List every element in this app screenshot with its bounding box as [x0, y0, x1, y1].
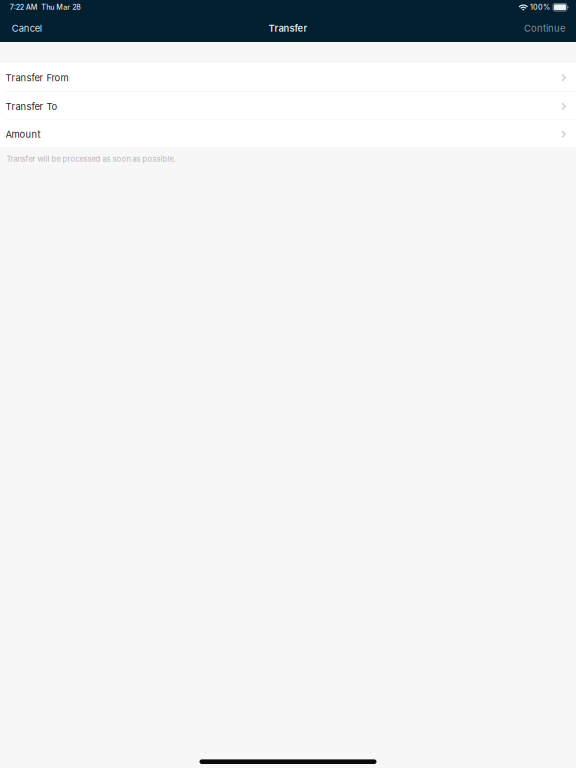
button[interactable]: Continue: [514, 19, 576, 38]
button[interactable]: Transfer From: [0, 63, 576, 91]
button[interactable]: Cancel: [0, 19, 52, 38]
staticText: Transfer To: [5, 101, 57, 112]
staticText: 100%: [530, 3, 550, 12]
staticText: Transfer will be processed as soon as po…: [7, 154, 176, 164]
staticText: Thu Mar 28: [41, 3, 81, 12]
staticText: Amount: [5, 129, 40, 140]
staticText: Continue: [524, 23, 565, 34]
staticText: Transfer From: [5, 72, 68, 84]
staticText: 7:22 AM: [10, 3, 38, 12]
staticText: Cancel: [12, 23, 42, 34]
button[interactable]: Transfer To: [0, 92, 576, 119]
staticText: Transfer: [268, 23, 307, 34]
button[interactable]: Amount: [0, 120, 576, 147]
